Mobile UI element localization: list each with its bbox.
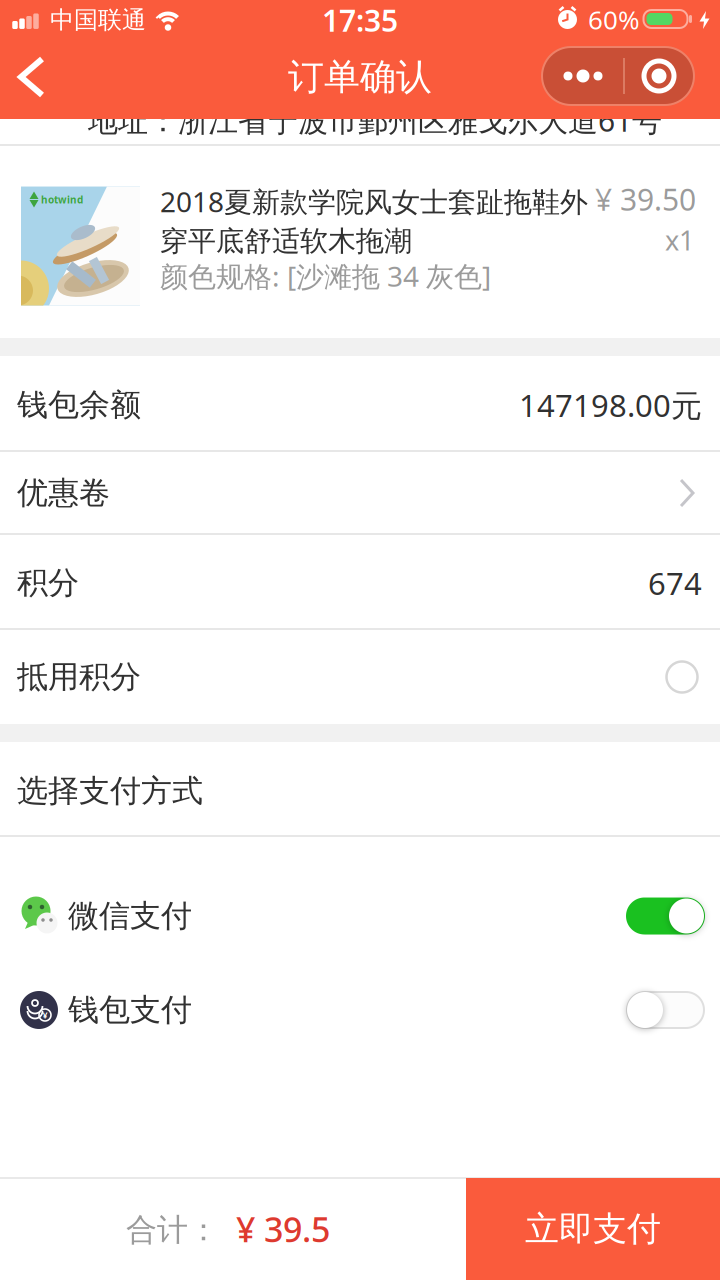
staticText: 选择支付方式 [17,771,203,811]
staticText: 地址：浙江省宁波市鄞州区雅戈尔大道61号 [88,100,662,140]
staticText: ¥ 39.50 [595,179,696,219]
button[interactable]: hotwind [0,146,720,338]
button[interactable]: 优惠卷 [0,451,720,534]
staticText: 17:35 [322,0,398,40]
staticText: 2018夏新款学院风女士套趾拖鞋外穿平底舒适软木拖潮 [160,182,588,259]
button[interactable]: Wallet Pay off [626,991,705,1029]
button[interactable]: More [541,46,623,106]
staticText: x1 [665,222,694,258]
button[interactable]: Back [17,56,47,98]
staticText: 674 [648,562,702,604]
staticText: 积分 [17,563,79,603]
staticText: hotwind [41,193,83,206]
staticText: 钱包余额 [17,385,141,425]
staticText: 抵用积分 [17,657,141,697]
button[interactable]: ¥ [0,970,720,1050]
staticText: 147198.00元 [519,384,702,426]
staticText: 中国联通 [50,5,146,35]
staticText: 合计： [126,1210,219,1250]
button[interactable]: 微信支付 [0,876,720,956]
staticText: 微信支付 [68,896,192,936]
button[interactable]: Use points [666,661,697,692]
staticText: 颜色规格: [沙滩拖 34 灰色] [160,257,491,295]
staticText: ¥ 39.5 [236,1206,330,1252]
staticText: 钱包支付 [68,990,192,1030]
staticText: 订单确认 [288,54,432,100]
staticText: ¥ [42,1009,47,1021]
staticText: 立即支付 [525,1208,661,1250]
staticText: 60% [588,2,640,37]
button[interactable]: 立即支付 [466,1178,720,1280]
staticText: 优惠卷 [17,473,110,513]
button[interactable]: Exit Mini Program [623,46,695,106]
button[interactable]: WeChat Pay on [626,897,705,934]
